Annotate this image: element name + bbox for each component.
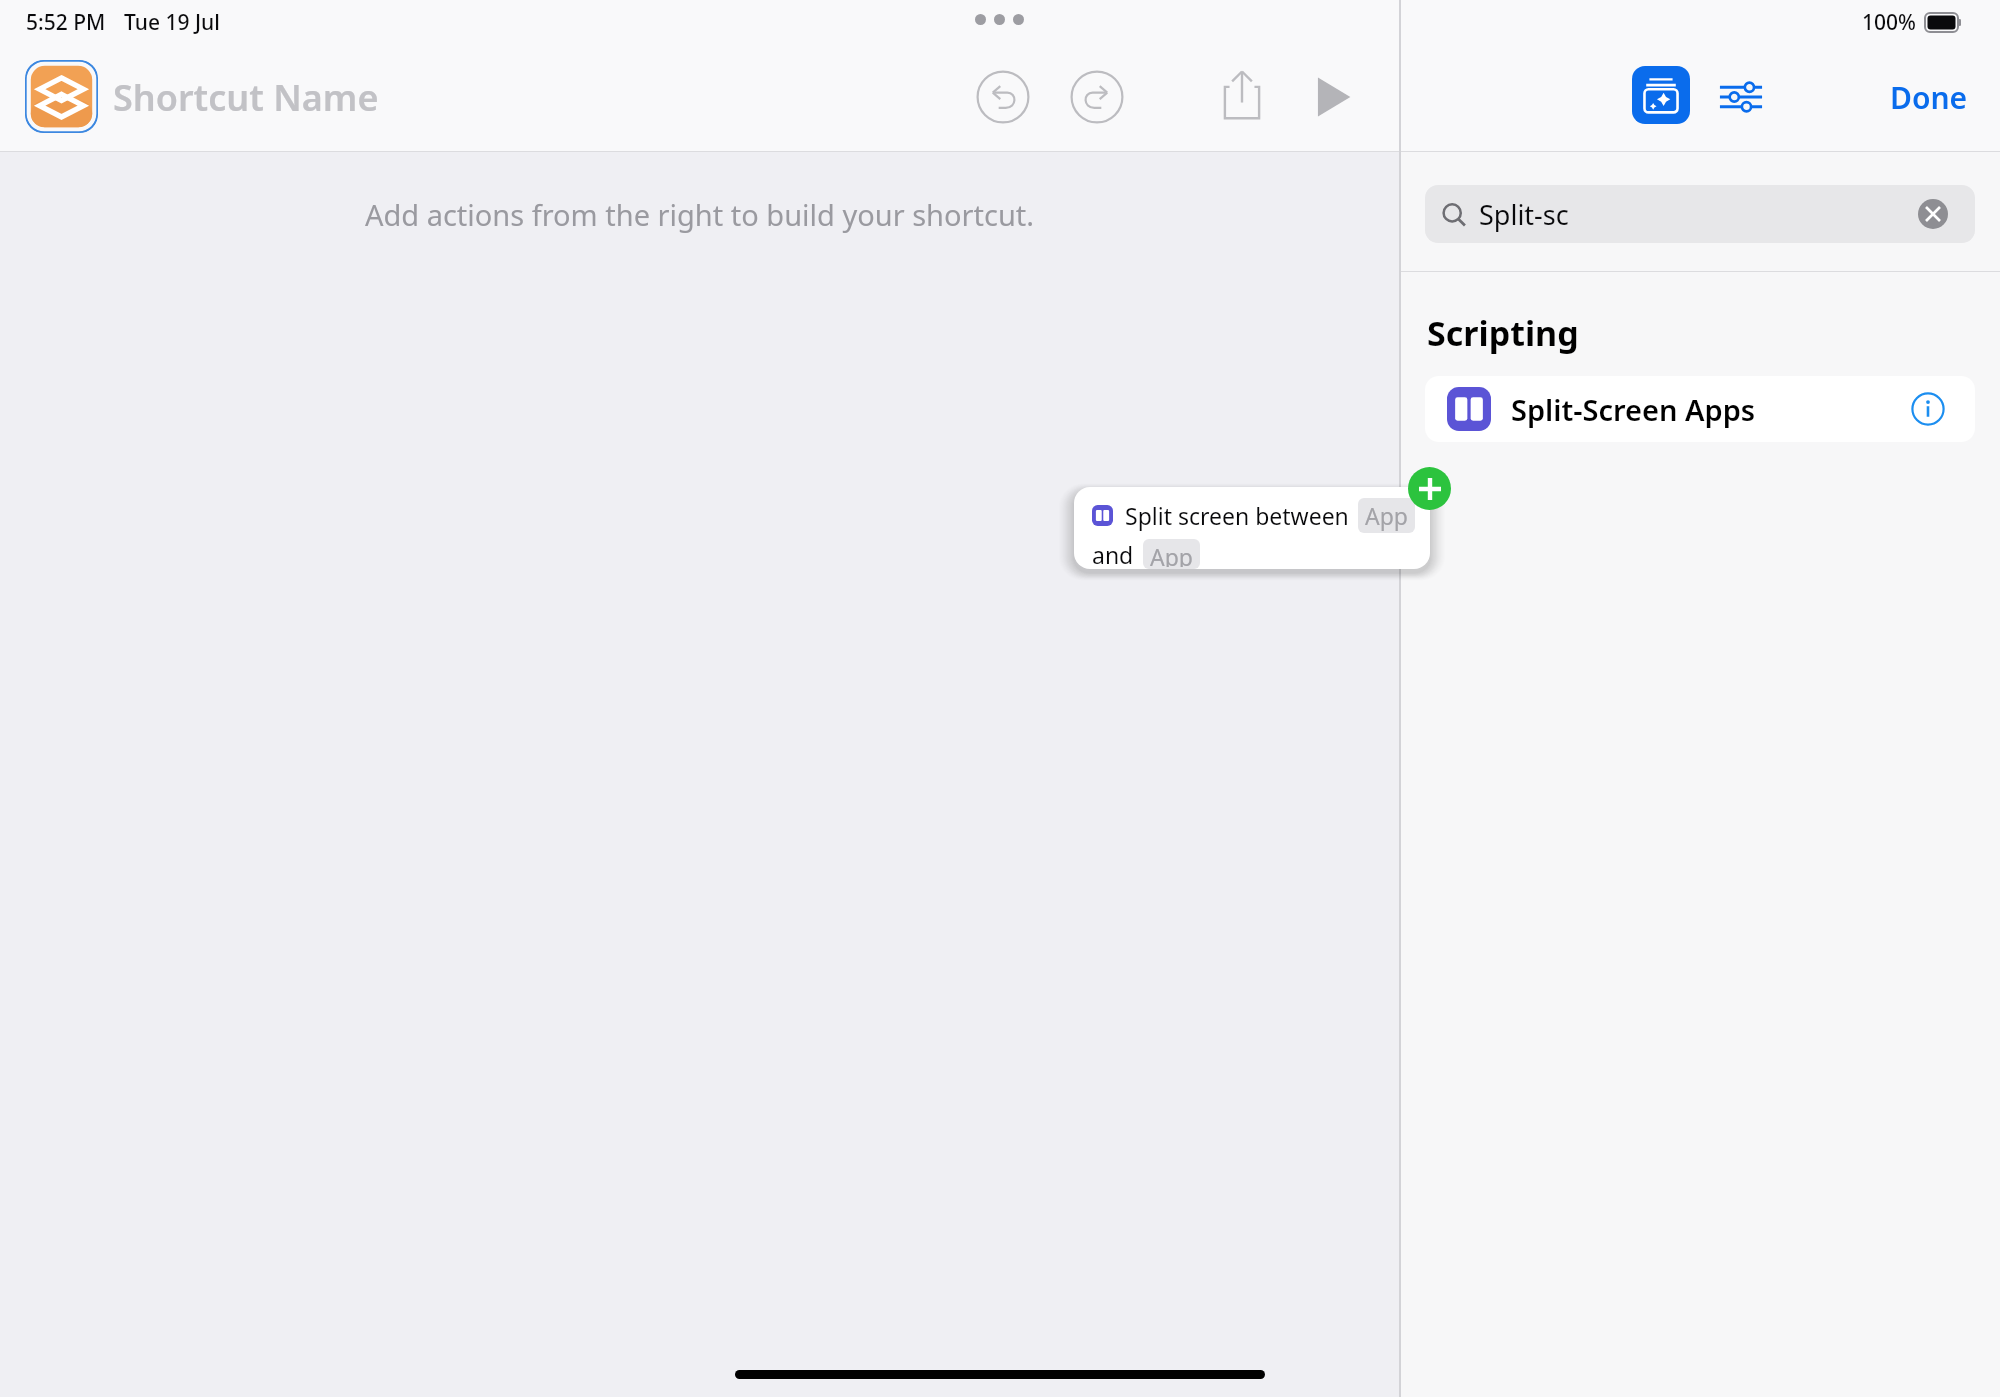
button[interactable]: Undo <box>976 70 1030 124</box>
button[interactable]: Split screen between <box>1074 487 1430 569</box>
button[interactable]: Action library <box>1632 66 1690 124</box>
staticText: 100% <box>1862 8 1916 37</box>
staticText: Done <box>1890 77 1968 118</box>
button[interactable]: Add action <box>1408 467 1451 510</box>
staticText: App <box>1365 500 1408 531</box>
button[interactable]: Shortcut details <box>1714 70 1768 124</box>
button[interactable]: Redo <box>1070 70 1124 124</box>
staticText: 5:52 PM <box>26 8 106 37</box>
staticText: Split-Screen Apps <box>1511 390 1756 429</box>
staticText: Tue 19 Jul <box>124 8 220 37</box>
button[interactable]: Split-Screen Apps <box>1425 376 1975 442</box>
button[interactable]: Clear search <box>1918 199 1948 229</box>
button[interactable]: Split-sc <box>1425 185 1975 243</box>
staticText: Scripting <box>1427 310 1579 356</box>
button[interactable]: About Split-Screen Apps <box>1911 392 1945 426</box>
staticText: and <box>1092 539 1134 569</box>
staticText: Split-sc <box>1479 196 1569 233</box>
staticText: Split screen between <box>1125 500 1349 531</box>
staticText: Add actions from the right to build your… <box>0 195 1399 234</box>
button[interactable]: Done <box>1890 68 1990 126</box>
staticText: Shortcut Name <box>113 73 379 122</box>
button[interactable]: Run shortcut <box>1305 70 1359 124</box>
button[interactable]: Share <box>1213 66 1271 124</box>
staticText: App <box>1150 541 1193 567</box>
button[interactable]: Shortcut Name <box>113 62 443 132</box>
button[interactable]: Shortcut icon <box>25 60 98 133</box>
